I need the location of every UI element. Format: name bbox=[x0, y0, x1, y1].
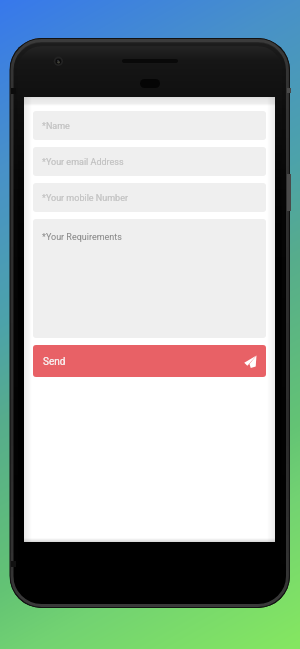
staticText: *Your Requirements bbox=[42, 232, 122, 243]
button[interactable]: *Name bbox=[33, 111, 266, 140]
other: Send bbox=[244, 355, 257, 368]
button[interactable]: *Your email Address bbox=[33, 147, 266, 176]
button[interactable]: *Your Requirements bbox=[33, 219, 266, 338]
button[interactable]: Send bbox=[33, 345, 266, 377]
staticText: *Your mobile Number bbox=[42, 193, 128, 204]
button[interactable]: *Your mobile Number bbox=[33, 183, 266, 212]
staticText: Send bbox=[43, 356, 66, 368]
staticText: *Your email Address bbox=[42, 157, 124, 168]
staticText: *Name bbox=[42, 121, 70, 132]
